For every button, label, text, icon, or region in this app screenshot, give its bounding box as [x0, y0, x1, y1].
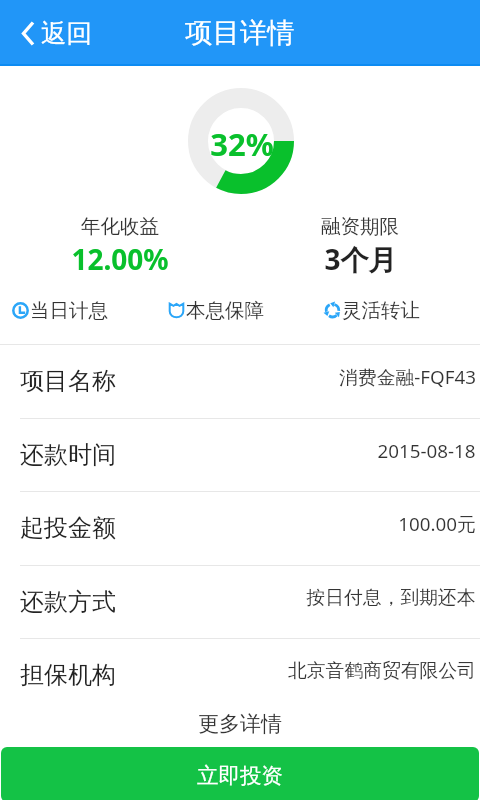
- staticText: 项目名称: [20, 366, 116, 396]
- staticText: 当日计息: [30, 298, 108, 323]
- staticText: 年化收益: [81, 214, 159, 239]
- staticText: 12.00%: [71, 240, 169, 278]
- staticText: 2015-08-18: [377, 438, 476, 464]
- staticText: 还款时间: [20, 440, 116, 470]
- button[interactable]: 灵活转让: [324, 298, 480, 323]
- button[interactable]: 更多详情: [0, 707, 480, 741]
- staticText: 担保机构: [20, 660, 116, 690]
- button[interactable]: 担保机构: [0, 638, 480, 712]
- staticText: 消费金融-FQF43: [339, 364, 476, 390]
- staticText: 按日付息，到期还本: [306, 586, 476, 610]
- button[interactable]: 立即投资: [1, 747, 479, 800]
- staticText: 本息保障: [186, 298, 264, 323]
- button[interactable]: 当日计息: [12, 298, 168, 323]
- button[interactable]: 起投金额: [0, 491, 480, 565]
- staticText: 100.00元: [398, 511, 476, 537]
- staticText: 返回: [41, 17, 92, 49]
- staticText: 立即投资: [197, 762, 283, 789]
- other: Back: [22, 21, 34, 46]
- staticText: 项目详情: [185, 16, 295, 51]
- button[interactable]: 还款时间: [0, 418, 480, 492]
- staticText: 32%: [210, 123, 274, 165]
- button[interactable]: 项目名称: [0, 344, 480, 418]
- staticText: 起投金额: [20, 513, 116, 543]
- staticText: 更多详情: [198, 711, 282, 737]
- button[interactable]: 本息保障: [168, 298, 324, 323]
- staticText: 还款方式: [20, 587, 116, 617]
- staticText: 融资期限: [321, 214, 399, 239]
- staticText: 3个月: [324, 240, 397, 278]
- button[interactable]: 还款方式: [0, 565, 480, 639]
- staticText: 灵活转让: [342, 298, 420, 323]
- staticText: 北京音鹤商贸有限公司: [288, 659, 476, 683]
- button[interactable]: Back: [16, 9, 98, 57]
